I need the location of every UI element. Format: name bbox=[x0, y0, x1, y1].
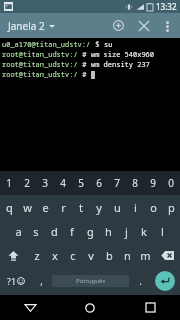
button[interactable]: k bbox=[135, 219, 153, 243]
button[interactable]: 5 bbox=[72, 171, 90, 195]
button[interactable]: y bbox=[90, 195, 108, 219]
button[interactable]: z bbox=[27, 243, 46, 267]
staticText: # bbox=[78, 70, 91, 80]
staticText: 4 bbox=[60, 176, 66, 190]
staticText: 5 bbox=[78, 176, 84, 190]
staticText: x bbox=[52, 248, 58, 263]
staticText: # bbox=[78, 60, 91, 70]
staticText: s bbox=[33, 224, 39, 239]
staticText: k bbox=[141, 224, 147, 239]
button[interactable]: Enter bbox=[149, 267, 180, 295]
staticText: 2 bbox=[24, 176, 30, 190]
staticText: j bbox=[125, 224, 128, 239]
button[interactable]: More options bbox=[156, 15, 178, 37]
staticText: h bbox=[105, 224, 112, 239]
button[interactable]: i bbox=[126, 195, 144, 219]
button[interactable]: o bbox=[144, 195, 162, 219]
button[interactable]: m bbox=[136, 243, 154, 267]
staticText: v bbox=[88, 248, 94, 263]
staticText: 1 bbox=[6, 176, 12, 190]
button[interactable]: 1 bbox=[0, 171, 18, 195]
staticText: root@titan_udstv:/ bbox=[2, 50, 78, 60]
staticText: g bbox=[87, 224, 94, 239]
staticText: 13:32 bbox=[156, 1, 177, 12]
button[interactable]: 3 bbox=[36, 171, 54, 195]
button[interactable]: 8 bbox=[126, 171, 144, 195]
staticText: root@titan_udstv:/ bbox=[2, 60, 78, 70]
staticText: . bbox=[139, 274, 142, 288]
button[interactable]: s bbox=[27, 219, 45, 243]
staticText: wm density 237 bbox=[91, 60, 150, 70]
button[interactable]: 9 bbox=[144, 171, 162, 195]
button[interactable]: ?1 bbox=[0, 267, 32, 295]
button[interactable]: Backspace bbox=[154, 243, 180, 267]
staticText: q bbox=[6, 200, 13, 215]
staticText: # bbox=[78, 50, 91, 60]
staticText: m bbox=[140, 248, 151, 263]
button[interactable]: c bbox=[64, 243, 82, 267]
button[interactable]: Shift bbox=[0, 243, 27, 267]
button[interactable]: t bbox=[72, 195, 90, 219]
button[interactable]: x bbox=[46, 243, 64, 267]
button[interactable]: p bbox=[162, 195, 180, 219]
button[interactable]: v bbox=[82, 243, 100, 267]
button[interactable]: Janela 2 bbox=[0, 15, 61, 37]
staticText: 0 bbox=[168, 176, 174, 190]
button[interactable]: h bbox=[99, 219, 117, 243]
staticText: e bbox=[42, 200, 49, 215]
button[interactable]: 0 bbox=[162, 171, 180, 195]
button[interactable]: g bbox=[81, 219, 99, 243]
button[interactable]: r bbox=[54, 195, 72, 219]
staticText: r bbox=[61, 200, 66, 215]
button[interactable]: , bbox=[32, 267, 50, 295]
staticText: y bbox=[96, 200, 102, 215]
staticText: o bbox=[150, 200, 157, 215]
button[interactable]: f bbox=[63, 219, 81, 243]
staticText: d bbox=[51, 224, 58, 239]
button[interactable]: 2 bbox=[18, 171, 36, 195]
staticText: 3 bbox=[42, 176, 48, 190]
staticText: a bbox=[15, 224, 22, 239]
button[interactable]: q bbox=[0, 195, 18, 219]
staticText: c bbox=[70, 248, 76, 263]
staticText: i bbox=[134, 200, 137, 215]
staticText: t bbox=[79, 200, 83, 215]
button[interactable]: Português bbox=[52, 275, 129, 287]
staticText: l bbox=[161, 224, 164, 239]
staticText: , bbox=[40, 274, 43, 288]
staticText: ?1 bbox=[7, 275, 17, 287]
staticText: 8 bbox=[132, 176, 138, 190]
staticText: z bbox=[34, 248, 40, 263]
button[interactable]: e bbox=[36, 195, 54, 219]
button[interactable]: u0_a170@titan_udstv:/ bbox=[0, 38, 180, 171]
button[interactable]: 6 bbox=[90, 171, 108, 195]
button[interactable]: l bbox=[153, 219, 171, 243]
button[interactable]: New window bbox=[106, 13, 131, 38]
staticText: u bbox=[114, 200, 121, 215]
button[interactable]: Close window bbox=[131, 13, 156, 38]
staticText: $ bbox=[91, 40, 104, 50]
staticText: n bbox=[124, 248, 131, 263]
button[interactable]: u bbox=[108, 195, 126, 219]
button[interactable]: j bbox=[117, 219, 135, 243]
staticText: Português bbox=[76, 277, 106, 285]
staticText: b bbox=[106, 248, 113, 263]
staticText: p bbox=[168, 200, 175, 215]
button[interactable]: 7 bbox=[108, 171, 126, 195]
button[interactable]: w bbox=[18, 195, 36, 219]
button[interactable]: n bbox=[118, 243, 136, 267]
staticText: u0_a170@titan_udstv:/ bbox=[2, 40, 91, 50]
staticText: 7 bbox=[114, 176, 120, 190]
staticText: 9 bbox=[150, 176, 156, 190]
button[interactable]: Back bbox=[0, 295, 60, 320]
button[interactable]: . bbox=[131, 267, 149, 295]
staticText: w bbox=[23, 200, 32, 215]
button[interactable]: a bbox=[9, 219, 27, 243]
staticText: root@titan_udstv:/ bbox=[2, 70, 78, 80]
button[interactable]: 4 bbox=[54, 171, 72, 195]
button[interactable]: Recent apps bbox=[120, 295, 180, 320]
button[interactable]: Home bbox=[60, 295, 120, 320]
button[interactable]: d bbox=[45, 219, 63, 243]
staticText: wm size 540x960 bbox=[91, 50, 154, 60]
button[interactable]: b bbox=[100, 243, 118, 267]
